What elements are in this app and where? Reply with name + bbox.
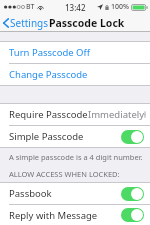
staticText: ALLOW ACCESS WHEN LOCKED: bbox=[9, 169, 120, 179]
staticText: Turn Passcode Off bbox=[9, 46, 91, 59]
button[interactable]: Simple Passcode switch, on bbox=[121, 130, 144, 144]
staticText: 100% bbox=[111, 2, 129, 12]
button[interactable]: Reply with Message switch, on bbox=[121, 208, 144, 222]
staticText: Require Passcode bbox=[9, 108, 88, 121]
staticText: Simple Passcode bbox=[9, 130, 84, 143]
button[interactable]: Settings bbox=[0, 14, 53, 32]
staticText: Change Passcode bbox=[9, 68, 88, 81]
staticText: Settings bbox=[10, 16, 49, 30]
button[interactable]: Turn Passcode Off bbox=[0, 42, 150, 63]
button[interactable]: Require Passcode bbox=[0, 104, 150, 125]
staticText: A simple passcode is a 4 digit number. bbox=[9, 152, 143, 162]
staticText: Reply with Message bbox=[9, 209, 98, 222]
staticText: Immediately bbox=[88, 108, 145, 121]
button[interactable]: Change Passcode bbox=[0, 64, 150, 85]
staticText: BT bbox=[26, 2, 35, 12]
staticText: Passbook bbox=[9, 187, 52, 200]
button[interactable]: Passbook switch, on bbox=[121, 187, 144, 201]
staticText: 13:42 bbox=[65, 2, 86, 13]
staticText: Passcode Lock bbox=[49, 16, 125, 30]
